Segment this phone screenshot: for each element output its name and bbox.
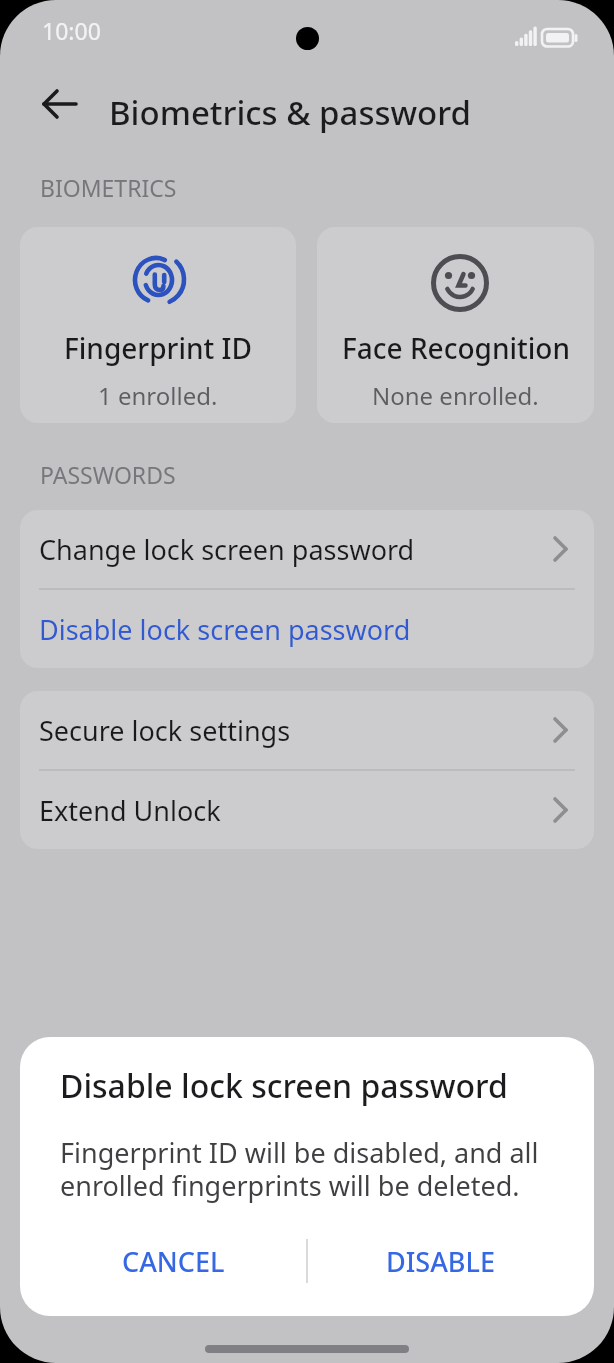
- button[interactable]: CANCEL: [40, 1226, 307, 1296]
- button[interactable]: Fingerprint ID: [20, 227, 296, 423]
- staticText: Face Recognition: [342, 329, 570, 367]
- button[interactable]: DISABLE: [307, 1226, 574, 1296]
- button[interactable]: Change lock screen password: [20, 510, 594, 588]
- staticText: DISABLE: [386, 1243, 495, 1280]
- staticText: BIOMETRICS: [40, 172, 177, 203]
- button[interactable]: Face Recognition: [317, 227, 594, 423]
- staticText: Biometrics & password: [109, 90, 472, 135]
- button[interactable]: [30, 74, 90, 134]
- staticText: None enrolled.: [372, 379, 539, 412]
- staticText: Extend Unlock: [39, 792, 221, 829]
- staticText: CANCEL: [122, 1243, 225, 1280]
- staticText: Disable lock screen password: [39, 611, 411, 648]
- button[interactable]: Disable lock screen password: [20, 590, 594, 668]
- staticText: Disable lock screen password: [60, 1064, 508, 1108]
- button[interactable]: Extend Unlock: [20, 771, 594, 849]
- staticText: PASSWORDS: [40, 459, 176, 490]
- staticText: Secure lock settings: [39, 712, 291, 749]
- staticText: Fingerprint ID: [64, 329, 252, 367]
- staticText: Fingerprint ID will be disabled, and all…: [60, 1134, 554, 1204]
- staticText: Change lock screen password: [39, 531, 415, 568]
- staticText: 10:00: [42, 15, 101, 46]
- button[interactable]: Secure lock settings: [20, 691, 594, 769]
- staticText: 1 enrolled.: [98, 379, 218, 412]
